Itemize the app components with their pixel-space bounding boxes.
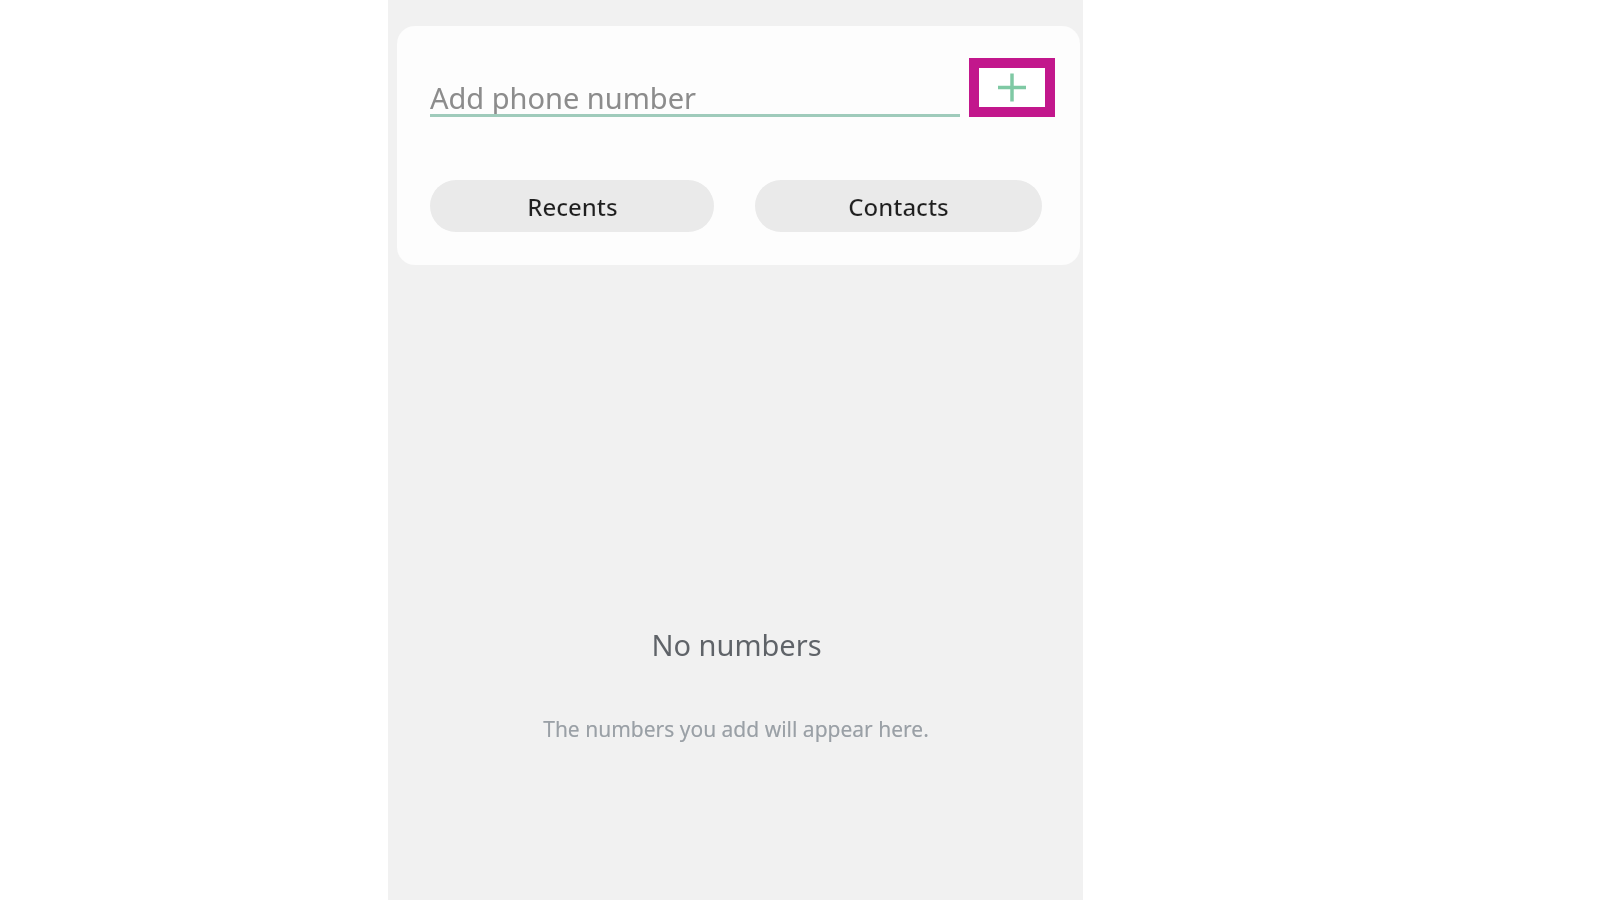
button[interactable]: Add number [969, 58, 1055, 117]
staticText: No numbers [651, 625, 822, 664]
button[interactable]: Add phone number [430, 66, 960, 128]
staticText: The numbers you add will appear here. [543, 715, 929, 744]
button[interactable]: Contacts [755, 180, 1042, 232]
staticText: Add phone number [430, 78, 696, 117]
button[interactable]: Recents [430, 180, 714, 232]
staticText: Recents [527, 190, 618, 223]
staticText: Contacts [848, 190, 949, 223]
